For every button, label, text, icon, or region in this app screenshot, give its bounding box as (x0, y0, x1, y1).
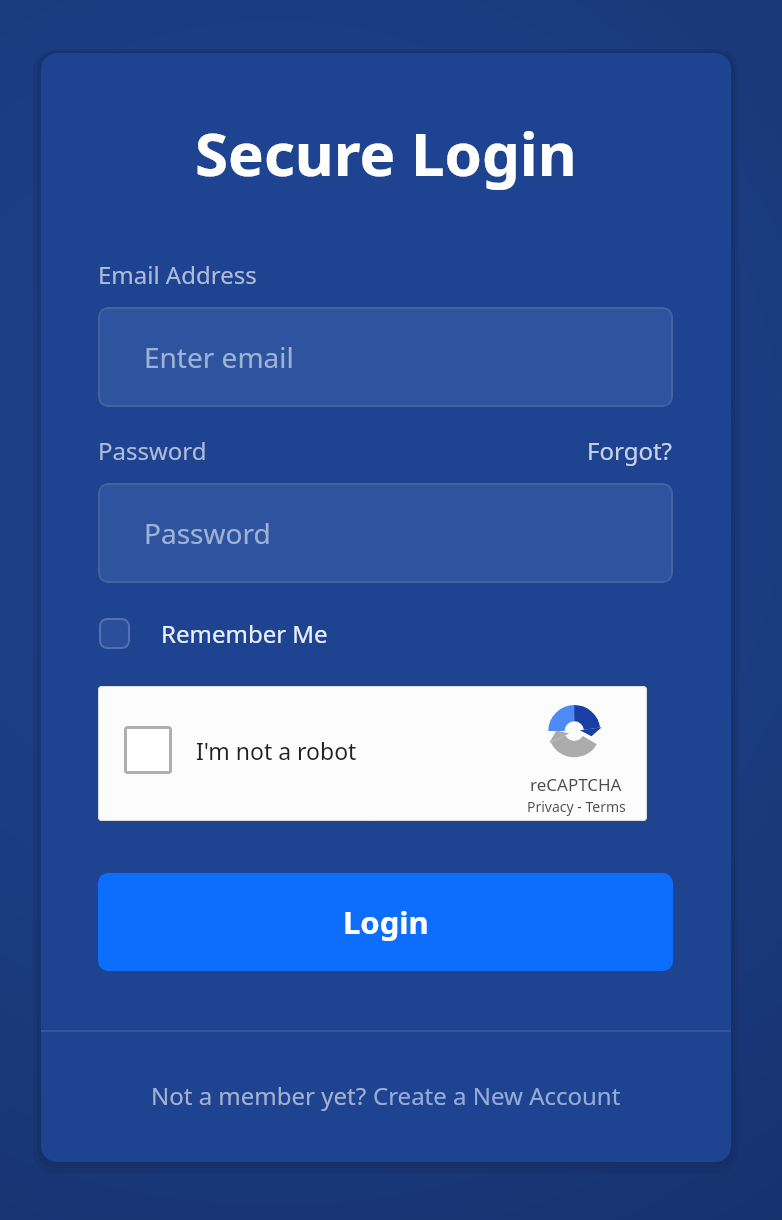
staticText: Secure Login (195, 112, 577, 194)
staticText: Remember Me (161, 617, 328, 650)
staticText: reCAPTCHA (530, 773, 622, 796)
button[interactable]: Forgot? (587, 434, 673, 467)
button[interactable] (124, 726, 172, 774)
staticText: Privacy - Terms (527, 797, 626, 816)
staticText: I'm not a robot (196, 735, 357, 766)
button[interactable]: Enter email (98, 307, 673, 407)
staticText: Password (144, 514, 271, 552)
staticText: Email Address (98, 258, 257, 291)
staticText: Not a member yet? (151, 1079, 373, 1112)
staticText: Login (343, 901, 429, 943)
button[interactable] (99, 618, 130, 649)
button[interactable]: Create a New Account (373, 1079, 621, 1112)
staticText: Enter email (144, 338, 294, 376)
staticText: Password (98, 434, 207, 467)
button[interactable]: Password (98, 483, 673, 583)
button[interactable]: Login (98, 873, 673, 971)
